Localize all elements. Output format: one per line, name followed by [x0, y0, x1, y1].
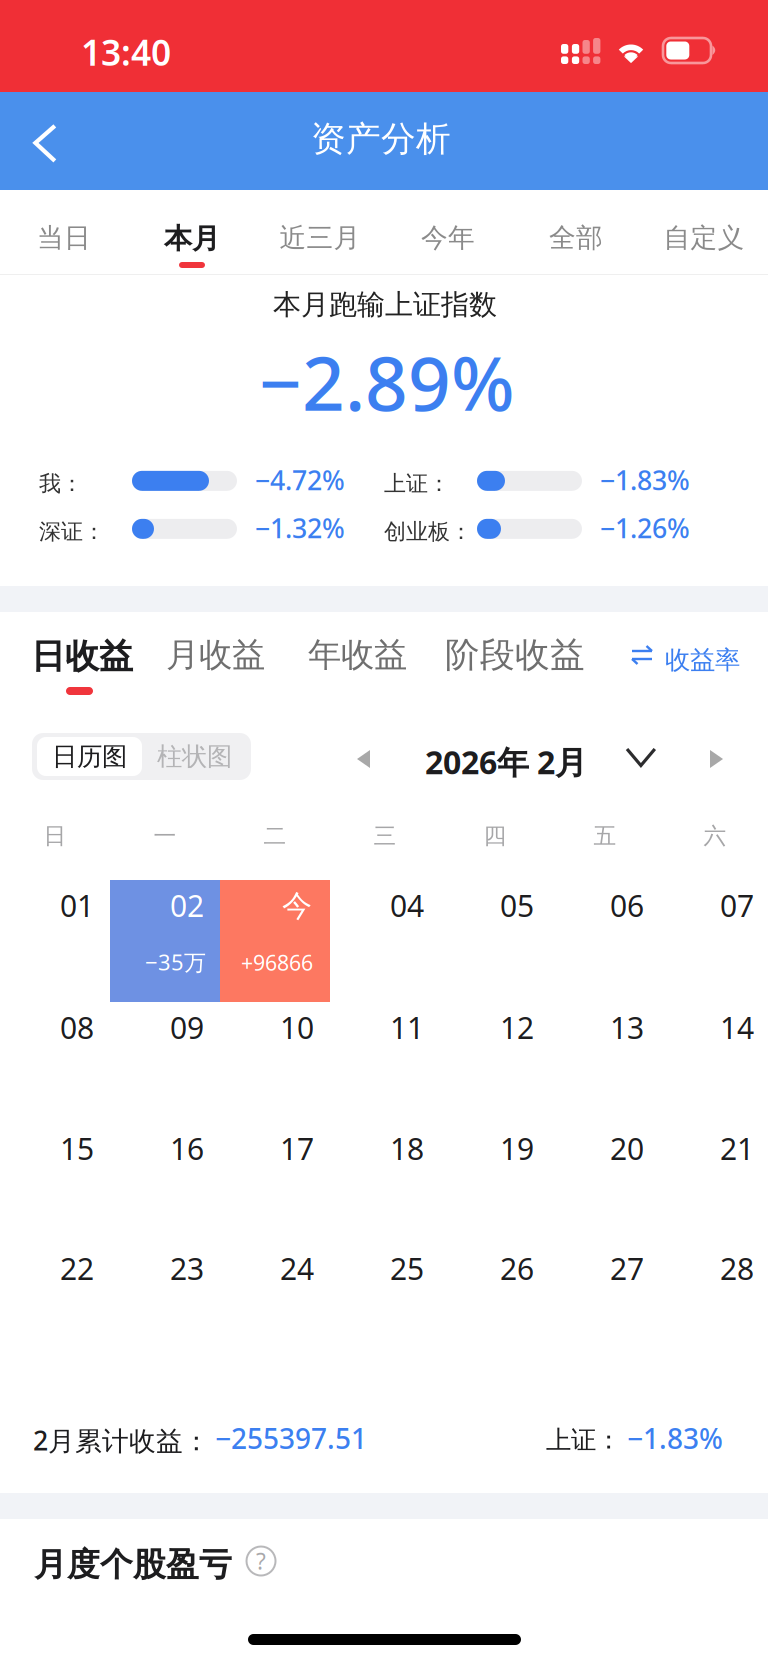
button[interactable]: 收益率 [632, 639, 750, 683]
button[interactable]: 日历图 [37, 737, 142, 776]
staticText: 08 [60, 1007, 94, 1048]
staticText: 近三月 [279, 221, 360, 255]
staticText: 四 [483, 822, 506, 850]
staticText: 21 [720, 1128, 754, 1169]
staticText: −35万 [145, 947, 206, 977]
staticText: 2026年 2月 [425, 740, 587, 784]
staticText: 当日 [37, 221, 91, 255]
staticText: 我： [39, 470, 83, 497]
staticText: 04 [390, 885, 424, 926]
button[interactable]: Choose month [609, 731, 673, 785]
staticText: ? [256, 1546, 266, 1576]
staticText: 10 [280, 1007, 314, 1048]
staticText: 15 [60, 1128, 94, 1169]
button[interactable]: 本月 [128, 190, 256, 274]
staticText: 22 [60, 1248, 94, 1289]
staticText: 12 [500, 1007, 534, 1048]
staticText: −4.72% [255, 462, 345, 498]
staticText: 今 [282, 887, 312, 925]
staticText: −255397.51 [215, 1419, 367, 1457]
button[interactable]: 月收益 [168, 639, 268, 683]
staticText: 一 [153, 822, 176, 850]
button[interactable]: 今年 [384, 190, 512, 274]
staticText: 02 [170, 885, 204, 926]
staticText: +96866 [241, 948, 313, 977]
staticText: 09 [170, 1007, 204, 1048]
staticText: 日历图 [52, 740, 127, 772]
staticText: −2.89% [259, 331, 515, 433]
staticText: −1.83% [600, 462, 690, 498]
staticText: 收益率 [665, 644, 740, 676]
button[interactable]: 年收益 [308, 639, 408, 683]
staticText: 自定义 [663, 221, 744, 255]
staticText: 17 [280, 1128, 314, 1169]
staticText: 25 [390, 1248, 424, 1289]
staticText: −1.32% [255, 510, 345, 546]
staticText: 本月跑输上证指数 [273, 287, 497, 322]
staticText: 13:40 [81, 28, 171, 76]
staticText: 19 [500, 1128, 534, 1169]
staticText: 今年 [421, 221, 475, 255]
staticText: 20 [610, 1128, 644, 1169]
staticText: 二 [263, 822, 286, 850]
staticText: 14 [720, 1007, 754, 1048]
staticText: 月度个股盈亏 [34, 1544, 232, 1585]
button[interactable]: 柱状图 [142, 737, 247, 776]
staticText: 01 [60, 885, 94, 926]
staticText: 日收益 [31, 635, 133, 678]
staticText: 13 [610, 1007, 644, 1048]
staticText: 三 [373, 822, 396, 850]
button[interactable]: Back [18, 92, 110, 190]
staticText: 28 [720, 1248, 754, 1289]
staticText: 27 [610, 1248, 644, 1289]
button[interactable]: 当日 [0, 190, 128, 274]
button[interactable]: Next month [690, 731, 744, 785]
staticText: 全部 [549, 221, 603, 255]
staticText: 23 [170, 1248, 204, 1289]
staticText: 07 [720, 885, 754, 926]
staticText: 阶段收益 [445, 633, 585, 677]
button[interactable]: 全部 [512, 190, 640, 274]
staticText: 24 [280, 1248, 314, 1289]
staticText: 年收益 [308, 634, 407, 676]
staticText: 五 [593, 822, 616, 850]
staticText: 柱状图 [157, 740, 232, 772]
staticText: 11 [390, 1007, 424, 1048]
staticText: 深证： [39, 518, 105, 545]
staticText: 26 [500, 1248, 534, 1289]
staticText: 日 [43, 822, 66, 850]
staticText: 上证： [546, 1424, 621, 1456]
staticText: −1.83% [627, 1419, 723, 1457]
staticText: 16 [170, 1128, 204, 1169]
button[interactable]: 自定义 [640, 190, 768, 274]
staticText: 月收益 [166, 634, 265, 676]
staticText: 六 [703, 822, 726, 850]
staticText: 创业板： [384, 518, 472, 545]
staticText: 资产分析 [311, 117, 451, 161]
button[interactable]: 近三月 [256, 190, 384, 274]
button[interactable]: Previous month [337, 731, 391, 785]
staticText: 上证： [384, 470, 450, 497]
staticText: −1.26% [600, 510, 690, 546]
button[interactable]: 阶段收益 [448, 639, 586, 683]
staticText: 2月累计收益： [33, 1422, 210, 1458]
button[interactable]: Help [239, 1539, 283, 1583]
staticText: 本月 [164, 221, 220, 256]
staticText: 18 [390, 1128, 424, 1169]
button[interactable]: 日收益 [36, 639, 140, 709]
staticText: 06 [610, 885, 644, 926]
staticText: 05 [500, 885, 534, 926]
